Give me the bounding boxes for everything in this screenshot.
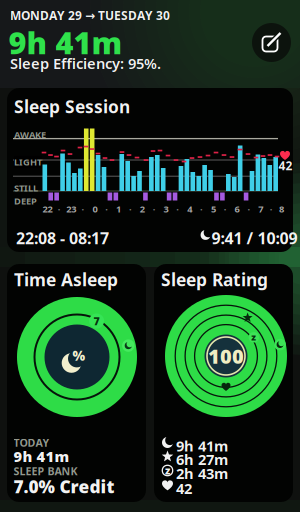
staticText: 9:41 / 10:09 (211, 227, 297, 249)
staticText: 7.0% Credit (13, 475, 114, 498)
staticText: % (72, 347, 85, 364)
button[interactable] (154, 264, 293, 502)
staticText: · (247, 203, 250, 215)
staticText: · (82, 203, 85, 215)
staticText: 0 (92, 203, 97, 215)
staticText: 23 (66, 203, 76, 215)
staticText: 42 (278, 157, 292, 173)
staticText: 8 (279, 203, 284, 215)
staticText: Sleep Session (14, 95, 130, 118)
staticText: 7 (94, 314, 100, 328)
staticText: · (200, 203, 203, 215)
staticText: MONDAY 29 → TUESDAY 30 (10, 7, 170, 23)
staticText: · (129, 203, 132, 215)
staticText: 7 (258, 203, 263, 215)
staticText: 9h 41m (8, 22, 122, 63)
staticText: 22:08 - 08:17 (16, 227, 109, 249)
staticText: 9h 41m (13, 446, 69, 466)
staticText: AWAKE (14, 128, 46, 141)
button[interactable] (7, 88, 293, 252)
staticText: STILL (14, 182, 38, 194)
staticText: DEEP (14, 195, 37, 207)
staticText: · (270, 203, 273, 215)
staticText: 1 (116, 203, 121, 215)
staticText: z (251, 331, 256, 343)
staticText: · (153, 203, 156, 215)
staticText: 3 (163, 203, 168, 215)
staticText: Sleep Efficiency: 95%. (10, 53, 161, 73)
staticText: 4 (187, 203, 192, 215)
staticText: 2 (140, 203, 145, 215)
staticText: 6h 27m (176, 449, 228, 469)
staticText: TODAY (13, 435, 49, 450)
staticText: 2h 43m (176, 463, 228, 483)
staticText: · (58, 203, 61, 215)
staticText: LIGHT (14, 156, 42, 168)
staticText: 9h 41m (176, 436, 228, 455)
staticText: · (176, 203, 179, 215)
button[interactable] (7, 264, 146, 502)
staticText: 22 (42, 203, 52, 215)
staticText: 42 (176, 478, 192, 498)
staticText: 6 (235, 203, 240, 215)
staticText: Time Asleep (14, 268, 118, 291)
staticText: · (224, 203, 227, 215)
staticText: Sleep Rating (161, 268, 268, 291)
staticText: SLEEP BANK (13, 464, 77, 478)
staticText: 5 (211, 203, 216, 215)
button[interactable] (252, 23, 291, 62)
staticText: 100 (208, 343, 244, 369)
staticText: · (105, 203, 108, 215)
staticText: z (165, 463, 170, 477)
